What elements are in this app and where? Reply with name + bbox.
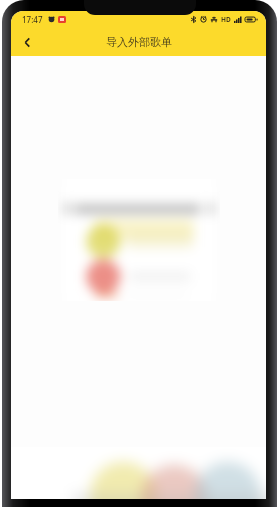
staticText: 17:47	[22, 14, 43, 25]
button[interactable]	[58, 179, 220, 301]
button[interactable]: Back	[11, 28, 43, 56]
staticText: HD	[221, 15, 231, 24]
staticText: 导入外部歌单	[106, 35, 172, 49]
